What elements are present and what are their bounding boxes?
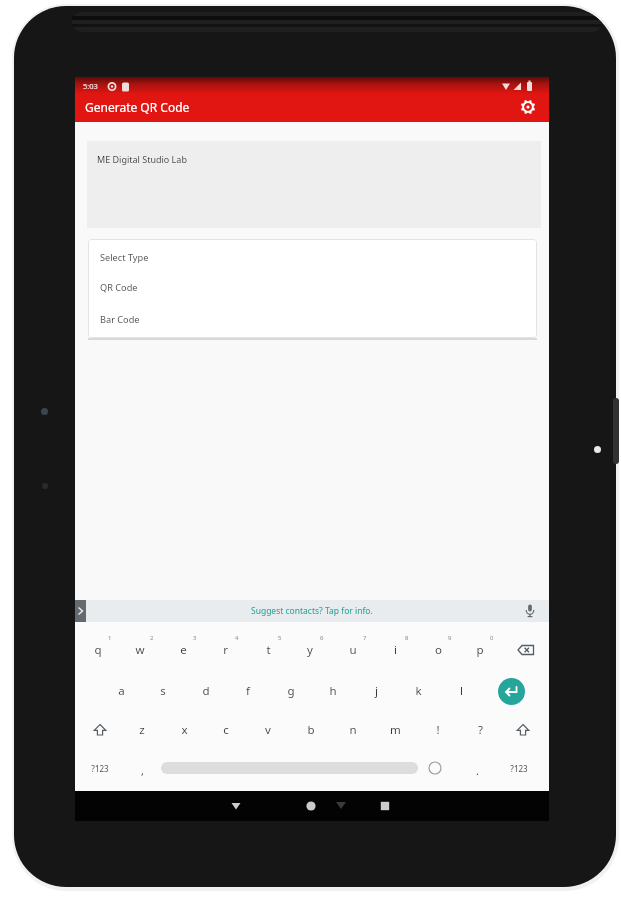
button[interactable] <box>512 640 540 660</box>
button[interactable] <box>509 720 537 740</box>
staticText: z <box>139 722 145 738</box>
button[interactable]: m <box>378 720 412 740</box>
button[interactable]: s <box>146 681 180 701</box>
button[interactable]: ! <box>421 720 455 740</box>
staticText: e <box>180 642 187 658</box>
staticText: p <box>476 642 484 658</box>
staticText: v <box>265 722 271 738</box>
button[interactable]: f <box>231 681 265 701</box>
button[interactable]: Bar Code <box>88 307 537 333</box>
button[interactable]: a <box>104 681 138 701</box>
button[interactable] <box>371 792 399 820</box>
staticText: j <box>375 683 378 699</box>
staticText: Generate QR Code <box>85 99 190 115</box>
button[interactable]: q <box>81 640 115 660</box>
staticText: 6 <box>320 634 324 642</box>
staticText: ME Digital Studio Lab <box>97 153 187 165</box>
staticText: t <box>266 642 271 658</box>
staticText: h <box>329 683 337 699</box>
button[interactable] <box>425 758 445 778</box>
button[interactable]: i <box>378 640 412 660</box>
staticText: a <box>118 683 125 699</box>
staticText: 5 <box>278 634 282 642</box>
button[interactable]: r <box>208 640 242 660</box>
staticText: Suggest contacts? Tap for info. <box>251 605 373 617</box>
button[interactable]: Suggest contacts? Tap for info. <box>75 600 549 622</box>
button[interactable]: , <box>130 760 154 780</box>
staticText: d <box>202 683 210 699</box>
staticText: , <box>141 763 144 778</box>
staticText: ? <box>478 722 483 738</box>
staticText: l <box>460 683 463 699</box>
staticText: c <box>223 722 229 738</box>
button[interactable]: t <box>251 640 285 660</box>
button[interactable]: v <box>251 720 285 740</box>
staticText: y <box>307 642 313 658</box>
button[interactable]: u <box>336 640 370 660</box>
button[interactable]: c <box>209 720 243 740</box>
button[interactable]: n <box>336 720 370 740</box>
button[interactable]: b <box>294 720 328 740</box>
button[interactable] <box>297 792 325 820</box>
button[interactable]: d <box>189 681 223 701</box>
staticText: q <box>94 642 102 658</box>
staticText: 5:03 <box>83 81 98 91</box>
staticText: 7 <box>363 634 367 642</box>
button[interactable] <box>222 792 250 820</box>
staticText: g <box>287 683 295 699</box>
button[interactable] <box>522 601 538 621</box>
staticText: Bar Code <box>100 313 140 326</box>
staticText: 4 <box>235 634 239 642</box>
staticText: f <box>246 683 250 699</box>
staticText: 3 <box>193 634 197 642</box>
staticText: k <box>415 683 422 699</box>
button[interactable]: ME Digital Studio Lab <box>87 141 541 228</box>
staticText: QR Code <box>100 281 138 294</box>
staticText: 8 <box>405 634 409 642</box>
staticText: u <box>349 642 357 658</box>
staticText: n <box>349 722 357 738</box>
staticText: r <box>223 642 228 658</box>
button[interactable]: z <box>125 720 159 740</box>
staticText: Select Type <box>100 251 149 264</box>
staticText: 9 <box>448 634 452 642</box>
button[interactable]: x <box>167 720 201 740</box>
button[interactable]: ? <box>463 720 497 740</box>
button[interactable]: ?123 <box>501 758 537 778</box>
button[interactable]: . <box>465 760 489 780</box>
staticText: 0 <box>490 634 494 642</box>
staticText: b <box>307 722 315 738</box>
staticText: m <box>390 722 401 738</box>
button[interactable]: k <box>401 681 435 701</box>
button[interactable]: w <box>123 640 157 660</box>
button[interactable]: e <box>166 640 200 660</box>
staticText: w <box>135 642 145 658</box>
staticText: ?123 <box>91 763 109 774</box>
button[interactable]: o <box>421 640 455 660</box>
staticText: i <box>394 642 397 658</box>
button[interactable]: j <box>359 681 393 701</box>
button[interactable]: h <box>316 681 350 701</box>
button[interactable]: p <box>463 640 497 660</box>
staticText: s <box>160 683 166 699</box>
button[interactable]: QR Code <box>88 275 537 301</box>
staticText: 2 <box>150 634 154 642</box>
staticText: 1 <box>108 634 112 642</box>
button[interactable] <box>86 720 114 740</box>
button[interactable]: Select Type <box>88 245 537 269</box>
staticText: x <box>181 722 188 738</box>
button[interactable]: g <box>274 681 308 701</box>
button[interactable]: ?123 <box>82 758 118 778</box>
staticText: ! <box>436 722 440 738</box>
staticText: . <box>476 763 479 778</box>
button[interactable]: y <box>293 640 327 660</box>
button[interactable]: l <box>444 681 478 701</box>
button[interactable] <box>516 95 540 119</box>
staticText: ?123 <box>510 763 528 774</box>
button[interactable] <box>498 678 525 705</box>
staticText: o <box>435 642 442 658</box>
